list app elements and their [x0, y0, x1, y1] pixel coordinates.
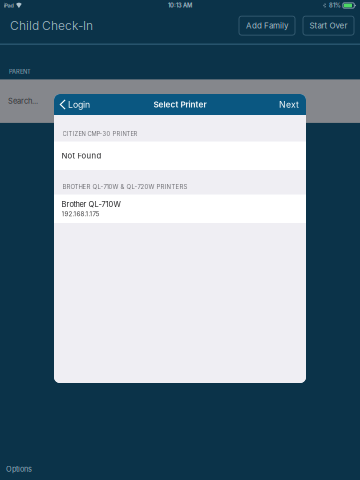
staticText: Start Over	[309, 21, 347, 30]
staticText: Next	[279, 99, 299, 110]
staticText: BROTHER QL-710W & QL-720W PRINTERS	[62, 183, 187, 190]
staticText: Add Family	[246, 21, 288, 30]
button[interactable]: Add Family	[239, 16, 295, 35]
staticText: 10:13 AM	[168, 2, 192, 9]
staticText: Search...	[8, 97, 38, 106]
button[interactable]: Login	[54, 94, 96, 115]
staticText: 81%	[329, 2, 341, 9]
button[interactable]: Not Found	[54, 141, 306, 170]
button[interactable]: Brother QL-710W	[54, 194, 306, 223]
staticText: PARENT	[9, 68, 31, 75]
staticText: CITIZEN CMP-30 PRINTER	[62, 131, 137, 137]
staticText: Select Printer	[153, 100, 206, 109]
staticText: Login	[68, 99, 90, 110]
staticText: 192.168.1.175	[61, 210, 99, 218]
button[interactable]: Next	[272, 94, 306, 115]
staticText: iPad	[4, 2, 14, 9]
button[interactable]: Start Over	[303, 16, 354, 35]
staticText: Child Check-In	[10, 18, 93, 33]
staticText: Brother QL-710W	[61, 200, 120, 209]
staticText: Not Found	[61, 151, 101, 160]
staticText: Options	[6, 465, 32, 473]
